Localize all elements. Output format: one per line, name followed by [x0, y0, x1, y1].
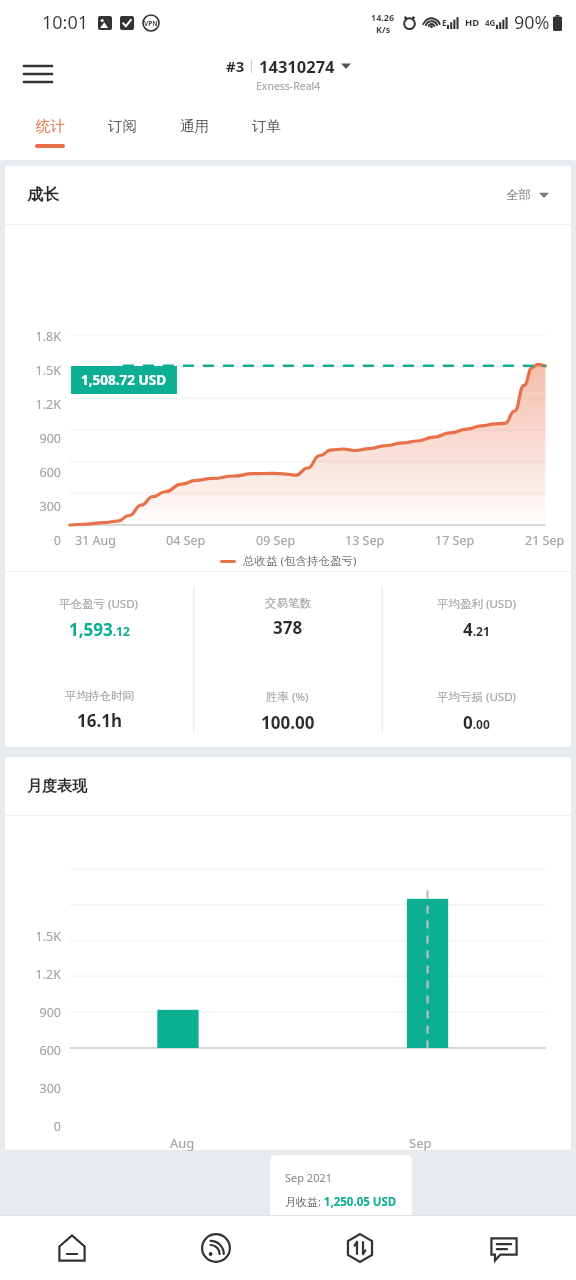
button[interactable]: 胜率 (%) [193, 689, 382, 734]
staticText: 600 [17, 464, 61, 481]
staticText: Exness-Real4 [256, 79, 321, 93]
button[interactable]: 平均盈利 (USD) [382, 596, 571, 641]
button[interactable]: 订阅 [86, 104, 158, 160]
button[interactable]: Menu [16, 52, 60, 96]
staticText: 04 Sep [166, 532, 206, 549]
staticText: 平均盈利 (USD) [437, 596, 517, 612]
button[interactable]: #3 [226, 55, 351, 93]
staticText: 月度表现 [27, 777, 87, 796]
staticText: 1,508.72 USD [81, 371, 167, 389]
staticText: 09 Sep [256, 532, 296, 549]
staticText: 900 [17, 430, 61, 447]
staticText: 13 Sep [345, 532, 385, 549]
staticText: 90% [514, 10, 550, 35]
button[interactable]: Signals [144, 1216, 288, 1280]
staticText: 300 [17, 498, 61, 515]
staticText: 17 Sep [435, 532, 475, 549]
staticText: 300 [17, 1080, 61, 1097]
button[interactable]: 平均持仓时间 [5, 689, 193, 732]
button[interactable]: 成长 [27, 166, 549, 224]
staticText: 1,593.12 [69, 618, 130, 641]
staticText: 订阅 [108, 117, 137, 135]
button[interactable]: 订单 [230, 104, 302, 160]
staticText: K/s [376, 23, 391, 35]
staticText: Sep 2021 [285, 1170, 333, 1185]
staticText: VPN [144, 19, 158, 28]
staticText: 600 [17, 1042, 61, 1059]
button[interactable]: 交易笔数 [193, 596, 382, 639]
staticText: 4.21 [463, 618, 490, 641]
staticText: 1.2K [17, 966, 61, 983]
staticText: 0 [17, 1118, 61, 1135]
staticText: 月收益: 1,250.05 USD [285, 1194, 397, 1210]
button[interactable]: 月度表现 [27, 757, 549, 815]
staticText: 378 [273, 616, 303, 639]
staticText: 0 [17, 532, 61, 549]
staticText: 14.26 [371, 11, 395, 23]
button[interactable]: Trade [288, 1216, 432, 1280]
staticText: #3 [226, 56, 245, 76]
staticText: 31 Aug [75, 532, 116, 549]
staticText: Aug [170, 1134, 195, 1152]
staticText: HD [465, 16, 480, 29]
staticText: 盈 [292, 1190, 304, 1204]
staticText: 成长 [27, 185, 59, 205]
staticText: 平仓盈亏 (USD) [59, 596, 139, 612]
staticText: E [442, 17, 447, 28]
staticText: 胜率 (%) [266, 689, 309, 705]
staticText: 1.8K [17, 328, 61, 345]
button[interactable]: Home [0, 1216, 144, 1280]
staticText: 1.5K [17, 928, 61, 945]
staticText: 订单 [252, 117, 281, 135]
staticText: 全部 [506, 187, 531, 203]
button[interactable]: 统计 [14, 104, 86, 160]
staticText: 通用 [180, 117, 209, 135]
staticText: 平均亏损 (USD) [437, 689, 517, 705]
staticText: 4G [485, 17, 496, 28]
staticText: 10:01 [42, 10, 89, 35]
staticText: 平均持仓时间 [65, 689, 134, 703]
staticText: 统计 [36, 117, 65, 135]
staticText: 900 [17, 1004, 61, 1021]
staticText: 100.00 [261, 711, 315, 734]
staticText: 交易笔数 [265, 596, 311, 610]
staticText: 1.2K [17, 396, 61, 413]
button[interactable]: 平仓盈亏 (USD) [5, 596, 193, 641]
staticText: Sep [409, 1134, 432, 1152]
staticText: 14310274 [259, 55, 335, 77]
staticText: 21 Sep [525, 532, 565, 549]
button[interactable]: Messages [432, 1216, 576, 1280]
staticText: 1.5K [17, 362, 61, 379]
staticText: 0.00 [463, 711, 490, 734]
staticText: 总收益 (包含持仓盈亏) [243, 553, 357, 569]
button[interactable]: 通用 [158, 104, 230, 160]
staticText: 16.1h [77, 709, 122, 732]
button[interactable]: 平均亏损 (USD) [382, 689, 571, 734]
